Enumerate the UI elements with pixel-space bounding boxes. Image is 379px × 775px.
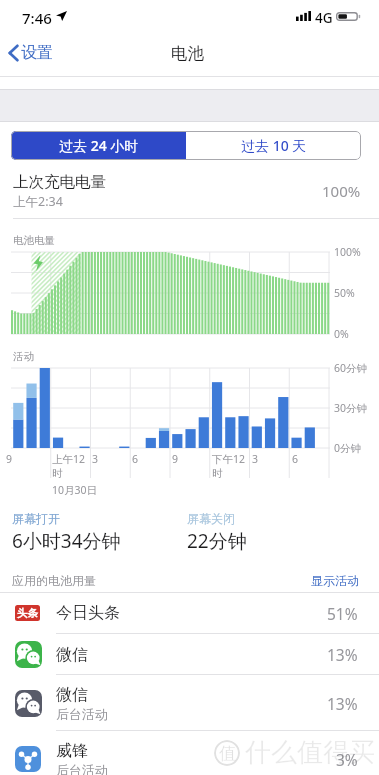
staticText: 30分钟 <box>334 401 368 415</box>
staticText: 4G <box>315 9 333 27</box>
staticText: 3 <box>92 452 99 466</box>
staticText: 屏幕关闭 <box>187 511 235 526</box>
staticText: 下午12 时 <box>212 452 246 480</box>
staticText: 上午12 时 <box>52 452 86 480</box>
button[interactable]: 头条 <box>0 592 379 634</box>
staticText: 设置 <box>21 43 53 63</box>
button[interactable]: 显示活动 <box>311 573 359 588</box>
staticText: 值 <box>219 743 236 764</box>
staticText: 6 <box>132 452 139 466</box>
staticText: 过去 10 天 <box>241 136 307 155</box>
staticText: 7:46 <box>22 8 52 28</box>
staticText: 6小时34分钟 <box>12 528 121 554</box>
staticText: 60分钟 <box>334 361 368 375</box>
staticText: 6 <box>292 452 299 466</box>
staticText: 50% <box>334 286 355 300</box>
staticText: 后台活动 <box>56 762 108 775</box>
staticText: 后台活动 <box>56 706 108 722</box>
staticText: 电池电量 <box>13 234 55 247</box>
button[interactable]: 微信 <box>0 634 379 675</box>
staticText: 3% <box>336 749 358 770</box>
staticText: 上次充电电量 <box>13 172 106 192</box>
staticText: 什么值得买 <box>245 736 375 769</box>
staticText: 13% <box>327 644 358 665</box>
staticText: 头条 <box>17 607 38 620</box>
staticText: 100% <box>322 181 361 201</box>
staticText: 微信 <box>56 685 88 705</box>
staticText: 0% <box>334 327 349 341</box>
staticText: 应用的电池用量 <box>12 573 96 588</box>
staticText: 100% <box>334 245 361 259</box>
staticText: 电池 <box>171 43 204 64</box>
staticText: 9 <box>172 452 179 466</box>
button[interactable]: 微信 <box>0 675 379 731</box>
button[interactable]: 过去 24 小时 <box>11 131 186 160</box>
staticText: 活动 <box>13 350 34 363</box>
staticText: 3 <box>252 452 259 466</box>
staticText: 22分钟 <box>187 528 247 554</box>
staticText: 10月30日 <box>52 483 98 497</box>
staticText: 13% <box>327 693 358 714</box>
staticText: 0分钟 <box>334 441 362 455</box>
staticText: 威锋 <box>56 741 88 761</box>
staticText: 显示活动 <box>311 573 359 588</box>
staticText: 51% <box>327 603 358 624</box>
staticText: 过去 24 小时 <box>59 136 139 155</box>
button[interactable]: 过去 10 天 <box>186 131 361 160</box>
staticText: 微信 <box>56 645 88 665</box>
button[interactable]: 威锋 <box>0 731 379 775</box>
staticText: 9 <box>6 452 13 466</box>
button[interactable]: 设置 <box>8 40 379 66</box>
staticText: 今日头条 <box>56 603 120 623</box>
staticText: 上午2:34 <box>13 193 63 210</box>
staticText: 屏幕打开 <box>12 511 60 526</box>
